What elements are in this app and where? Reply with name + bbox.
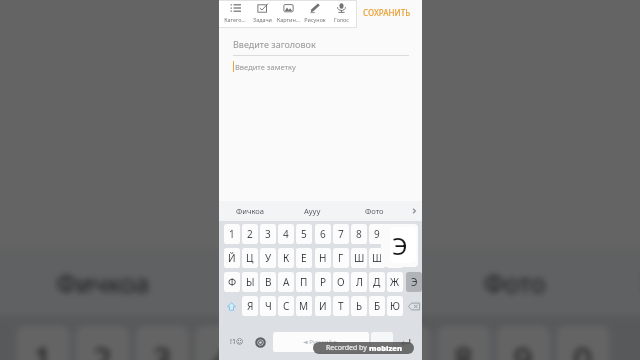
button[interactable]: Ж <box>387 272 403 292</box>
staticText: Р <box>320 275 327 289</box>
button[interactable]: Задачи <box>249 3 275 26</box>
staticText: Б <box>374 299 381 313</box>
staticText: Г <box>338 251 344 265</box>
button[interactable]: Фото <box>411 250 616 316</box>
button[interactable]: Ч <box>260 296 276 316</box>
staticText: Фичкоа <box>236 206 265 216</box>
button[interactable]: Картин… <box>275 3 301 26</box>
button[interactable]: 7 <box>333 224 349 244</box>
button[interactable]: 8 <box>437 326 490 360</box>
button[interactable]: 8 <box>351 224 367 244</box>
button[interactable]: Е <box>296 248 312 268</box>
button[interactable]: More suggestions <box>405 201 422 221</box>
button[interactable]: Б <box>369 296 385 316</box>
button[interactable]: Й <box>224 248 240 268</box>
staticText: Ч <box>265 299 272 313</box>
staticText: А <box>283 275 290 289</box>
button[interactable] <box>371 332 393 352</box>
button[interactable]: Фото <box>343 201 405 221</box>
staticText: Введите заголовок <box>233 38 316 50</box>
button[interactable]: Фичкоа <box>0 250 209 316</box>
button[interactable]: Space <box>273 332 369 352</box>
button[interactable]: К <box>278 248 294 268</box>
button[interactable]: 3 <box>260 224 276 244</box>
button[interactable]: И <box>315 296 331 316</box>
button[interactable]: 9 <box>497 326 550 360</box>
staticText: 3 <box>265 227 271 241</box>
button[interactable]: Ы <box>242 272 258 292</box>
button[interactable]: Ц <box>242 248 258 268</box>
button[interactable]: Н <box>315 248 331 268</box>
button[interactable]: Рисунок <box>302 3 328 26</box>
button[interactable]: Фичкоа <box>219 201 282 221</box>
button[interactable]: 5 <box>296 224 312 244</box>
button[interactable]: В <box>260 272 276 292</box>
button[interactable]: Symbols <box>227 332 246 352</box>
button[interactable]: 4 <box>278 224 294 244</box>
staticText: Э <box>411 275 418 289</box>
button[interactable]: Э <box>406 272 422 292</box>
button[interactable]: 1 <box>17 326 70 360</box>
button[interactable]: Введите заметку <box>235 62 296 72</box>
staticText: Ь <box>356 299 363 313</box>
button[interactable]: Recorded by mobizen <box>313 342 414 354</box>
staticText: !1☺ <box>230 337 244 347</box>
button[interactable]: Щ <box>369 248 385 268</box>
staticText: 4 <box>212 336 232 360</box>
button[interactable]: СОХРАНИТЬ <box>363 7 411 18</box>
button[interactable]: Д <box>369 272 385 292</box>
staticText: Ц <box>246 251 254 265</box>
staticText: 5 <box>301 227 307 241</box>
staticText: Ш <box>354 251 365 265</box>
button[interactable]: Л <box>351 272 367 292</box>
button[interactable]: Ауyy <box>282 201 343 221</box>
staticText: Голос <box>334 16 349 23</box>
button[interactable]: Р <box>315 272 331 292</box>
button[interactable]: О <box>333 272 349 292</box>
staticText: Ы <box>246 275 255 289</box>
staticText: Фичкоа <box>56 266 152 299</box>
button[interactable]: У <box>260 248 276 268</box>
staticText: 0 <box>573 336 593 360</box>
button[interactable]: 3 <box>136 326 189 360</box>
button[interactable]: Ш <box>351 248 367 268</box>
button[interactable]: А <box>278 272 294 292</box>
button[interactable]: Г <box>333 248 349 268</box>
button[interactable]: Shift <box>224 296 239 316</box>
staticText: mobizen <box>369 343 402 353</box>
button[interactable]: Я <box>242 296 258 316</box>
button[interactable]: З <box>387 248 403 268</box>
button[interactable]: 2 <box>76 326 129 360</box>
button[interactable]: 1 <box>224 224 240 244</box>
button[interactable]: 9 <box>369 224 385 244</box>
button[interactable]: 4 <box>195 326 248 360</box>
button[interactable]: Введите заголовок <box>233 38 316 50</box>
button[interactable]: 5 <box>255 326 308 360</box>
button[interactable]: Backspace <box>406 296 421 316</box>
button[interactable]: Голос <box>328 3 354 26</box>
button[interactable]: М <box>296 296 312 316</box>
button[interactable]: Enter <box>395 332 416 352</box>
button[interactable]: 6 <box>318 326 371 360</box>
button[interactable]: С <box>278 296 294 316</box>
button[interactable]: Катего… <box>222 3 248 26</box>
button[interactable]: 2 <box>242 224 258 244</box>
button[interactable]: Settings <box>251 332 270 352</box>
staticText: И <box>319 299 327 313</box>
staticText: Введите заметку <box>235 62 296 72</box>
button[interactable]: Ауyy <box>209 250 411 316</box>
staticText: В <box>265 275 272 289</box>
button[interactable]: Ю <box>387 296 403 316</box>
staticText: Катего… <box>224 16 246 23</box>
button[interactable]: Т <box>333 296 349 316</box>
button[interactable]: 0 <box>387 224 403 244</box>
staticText: Э <box>392 229 408 262</box>
button[interactable]: 7 <box>378 326 431 360</box>
button[interactable]: Ф <box>224 272 240 292</box>
button[interactable]: 0 <box>557 326 610 360</box>
staticText: 6 <box>335 336 354 360</box>
button[interactable]: Ь <box>351 296 367 316</box>
button[interactable]: П <box>296 272 312 292</box>
button[interactable]: 6 <box>315 224 331 244</box>
